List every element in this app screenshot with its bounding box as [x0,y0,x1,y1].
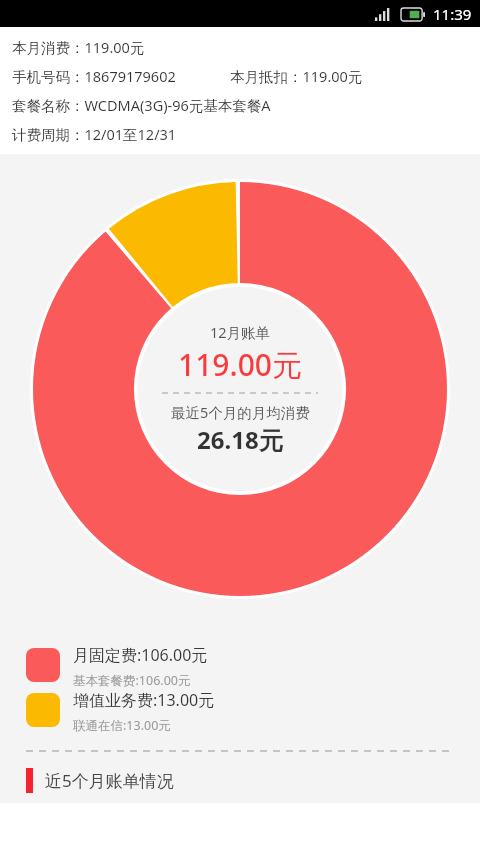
staticText: 近5个月账单情况 [45,769,174,792]
staticText: 119.00元 [178,344,302,385]
staticText: 本月抵扣：119.00元 [230,66,363,86]
staticText: 12月账单 [210,322,271,342]
staticText: 11:39 [433,4,472,24]
button[interactable]: 月固定费:106.00元 [0,644,480,689]
staticText: 计费周期：12/01至12/31 [12,124,177,144]
staticText: 联通在信:13.00元 [73,717,171,734]
staticText: 增值业务费:13.00元 [73,689,215,711]
staticText: 26.18元 [197,423,283,456]
staticText: 手机号码：18679179602 [12,66,176,86]
staticText: 最近5个月的月均消费 [171,402,310,422]
staticText: 月固定费:106.00元 [73,644,208,666]
button[interactable]: 近5个月账单情况 [0,768,480,793]
staticText: 本月消费：119.00元 [12,37,145,57]
staticText: 套餐名称：WCDMA(3G)-96元基本套餐A [12,95,271,115]
button[interactable]: 增值业务费:13.00元 [0,689,480,734]
staticText: 基本套餐费:106.00元 [73,672,191,689]
